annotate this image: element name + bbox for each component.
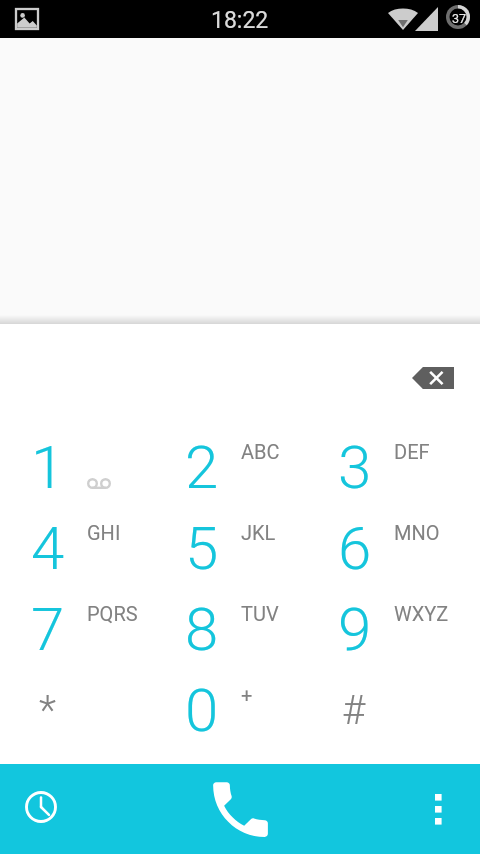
staticText: TUV	[241, 602, 279, 625]
staticText: ABC	[241, 440, 280, 463]
button[interactable]: 0	[159, 666, 312, 747]
staticText: #	[342, 687, 366, 734]
button[interactable]: 7	[5, 585, 158, 666]
staticText: 0	[185, 675, 219, 745]
staticText: 3	[338, 432, 372, 502]
button[interactable]: Recents	[17, 783, 65, 831]
button[interactable]: 4	[5, 504, 158, 585]
button[interactable]: 2	[159, 423, 312, 504]
staticText: 6	[338, 513, 372, 583]
button[interactable]: #	[312, 666, 465, 747]
staticText: 9	[338, 594, 372, 664]
button[interactable]: More options	[414, 785, 462, 833]
button[interactable]: 1	[5, 423, 158, 504]
staticText: MNO	[394, 521, 440, 544]
staticText: 18:22	[211, 7, 269, 34]
staticText: DEF	[394, 440, 430, 463]
staticText: JKL	[241, 521, 276, 544]
button[interactable]: 9	[312, 585, 465, 666]
staticText: 4	[31, 513, 65, 583]
button[interactable]: Dialpad	[203, 772, 277, 846]
staticText: 1	[31, 432, 65, 502]
button[interactable]: *	[5, 666, 158, 747]
staticText: PQRS	[87, 602, 138, 625]
staticText: +	[241, 683, 253, 706]
staticText: WXYZ	[394, 602, 449, 625]
button[interactable]: 5	[159, 504, 312, 585]
button[interactable]: 3	[312, 423, 465, 504]
button[interactable]: Backspace	[405, 357, 461, 399]
staticText: *	[39, 687, 56, 734]
staticText: 2	[185, 432, 219, 502]
button[interactable]: 8	[159, 585, 312, 666]
staticText: GHI	[87, 521, 121, 544]
staticText: 8	[185, 594, 219, 664]
staticText: 7	[31, 594, 65, 664]
staticText: 5	[185, 513, 219, 583]
button[interactable]: 6	[312, 504, 465, 585]
staticText: 37	[452, 11, 467, 26]
